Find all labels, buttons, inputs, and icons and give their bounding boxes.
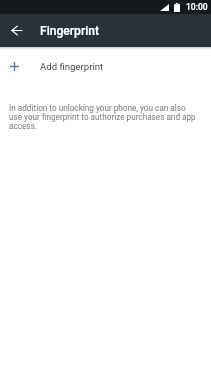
staticText: 10:00 — [186, 2, 208, 12]
staticText: In addition to unlocking your phone, you… — [9, 103, 197, 131]
staticText: Add fingerprint — [40, 61, 104, 72]
button[interactable]: Add fingerprint — [0, 51, 211, 82]
staticText: Fingerprint — [40, 24, 99, 38]
button[interactable]: Back — [0, 14, 33, 47]
